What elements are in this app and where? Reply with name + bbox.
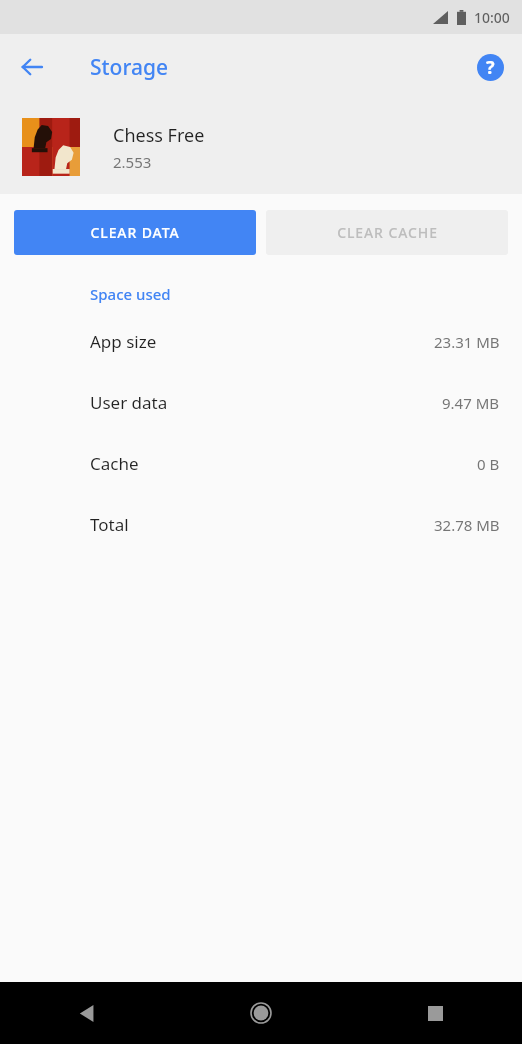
staticText: 2.553 bbox=[113, 152, 152, 172]
button[interactable]: Back bbox=[0, 982, 174, 1044]
staticText: ? bbox=[486, 55, 495, 80]
button[interactable]: CLEAR CACHE bbox=[266, 210, 508, 255]
button[interactable]: Back bbox=[8, 43, 56, 91]
staticText: Space used bbox=[90, 284, 171, 304]
staticText: CLEAR DATA bbox=[90, 223, 180, 242]
staticText: Total bbox=[90, 513, 129, 536]
staticText: User data bbox=[90, 391, 168, 414]
staticText: Storage bbox=[90, 53, 168, 82]
button[interactable]: User data bbox=[0, 372, 522, 433]
button[interactable]: Home bbox=[174, 982, 348, 1044]
button[interactable]: Help bbox=[470, 47, 510, 87]
button[interactable]: CLEAR DATA bbox=[14, 210, 256, 255]
staticText: 32.78 MB bbox=[434, 515, 500, 535]
button[interactable]: Total bbox=[0, 494, 522, 555]
button[interactable]: Cache bbox=[0, 433, 522, 494]
button[interactable]: App size bbox=[0, 311, 522, 372]
staticText: Cache bbox=[90, 452, 139, 475]
button[interactable]: Recent apps bbox=[348, 982, 522, 1044]
staticText: 9.47 MB bbox=[442, 393, 500, 413]
staticText: 0 B bbox=[477, 454, 500, 474]
staticText: App size bbox=[90, 330, 157, 353]
staticText: CLEAR CACHE bbox=[337, 223, 438, 242]
staticText: 23.31 MB bbox=[434, 332, 500, 352]
staticText: 10:00 bbox=[474, 8, 510, 27]
staticText: Chess Free bbox=[113, 123, 205, 148]
